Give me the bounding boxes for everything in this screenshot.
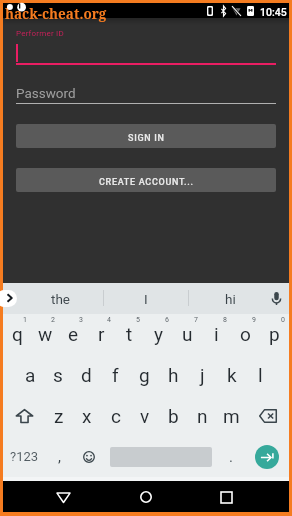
staticText: 7 xyxy=(194,316,198,324)
staticText: v xyxy=(140,405,150,427)
button[interactable]: x xyxy=(73,395,101,436)
button[interactable]: Enter xyxy=(255,445,279,469)
button[interactable]: hi xyxy=(188,283,273,314)
button[interactable]: Voice input xyxy=(267,286,285,310)
staticText: 3 xyxy=(79,316,83,324)
staticText: 0 xyxy=(281,316,285,324)
staticText: m xyxy=(223,405,240,427)
staticText: o xyxy=(240,323,251,345)
button[interactable]: a xyxy=(16,354,44,395)
staticText: the xyxy=(51,291,71,307)
button[interactable]: Emoji xyxy=(77,436,101,477)
button[interactable]: h xyxy=(159,354,188,395)
button[interactable]: e xyxy=(59,314,87,354)
button[interactable]: , xyxy=(47,436,71,477)
staticText: 6 xyxy=(165,316,169,324)
button[interactable]: n xyxy=(188,395,217,436)
button[interactable]: y xyxy=(144,314,173,354)
staticText: h xyxy=(168,364,179,386)
staticText: SIGN IN xyxy=(128,133,165,144)
button[interactable]: c xyxy=(101,395,130,436)
staticText: Performer ID xyxy=(16,29,64,38)
button[interactable]: v xyxy=(130,395,159,436)
staticText: u xyxy=(182,323,193,345)
button[interactable]: w xyxy=(31,314,59,354)
button[interactable]: . xyxy=(219,436,243,477)
button[interactable]: SIGN IN xyxy=(16,124,276,148)
staticText: d xyxy=(81,364,92,386)
button[interactable]: Shift xyxy=(3,395,45,436)
button[interactable]: l xyxy=(246,354,275,395)
button[interactable]: d xyxy=(72,354,101,395)
staticText: ?123 xyxy=(10,449,39,464)
button[interactable]: k xyxy=(217,354,246,395)
button[interactable]: b xyxy=(159,395,188,436)
staticText: , xyxy=(58,448,61,466)
button[interactable]: j xyxy=(188,354,217,395)
button[interactable]: t xyxy=(115,314,144,354)
staticText: w xyxy=(38,323,53,345)
staticText: f xyxy=(112,364,119,386)
button[interactable]: ?123 xyxy=(8,436,41,477)
button[interactable]: Expand suggestions xyxy=(0,290,17,307)
staticText: j xyxy=(200,364,205,386)
staticText: 5 xyxy=(136,316,140,324)
button[interactable]: Back xyxy=(48,482,78,512)
button[interactable]: I xyxy=(104,283,188,314)
button[interactable]: Backspace xyxy=(246,395,289,436)
staticText: r xyxy=(98,323,105,345)
staticText: p xyxy=(269,323,280,345)
staticText: t xyxy=(126,323,133,345)
staticText: I xyxy=(144,291,148,307)
button[interactable]: m xyxy=(217,395,246,436)
button[interactable]: i xyxy=(202,314,231,354)
staticText: hi xyxy=(225,291,236,307)
staticText: y xyxy=(154,323,163,345)
button[interactable]: u xyxy=(173,314,202,354)
button[interactable]: o xyxy=(231,314,260,354)
button[interactable]: s xyxy=(44,354,72,395)
button[interactable]: q xyxy=(3,314,31,354)
staticText: CREATE ACCOUNT... xyxy=(99,177,194,188)
button[interactable]: CREATE ACCOUNT... xyxy=(16,168,276,192)
staticText: 9 xyxy=(252,316,256,324)
staticText: c xyxy=(111,405,121,427)
staticText: l xyxy=(258,364,263,386)
button[interactable]: r xyxy=(87,314,115,354)
staticText: x xyxy=(82,405,92,427)
staticText: i xyxy=(214,323,219,345)
button[interactable]: Recents xyxy=(211,482,241,512)
button[interactable]: g xyxy=(130,354,159,395)
staticText: b xyxy=(168,405,179,427)
button[interactable]: z xyxy=(45,395,73,436)
staticText: Password xyxy=(16,85,76,101)
staticText: e xyxy=(68,323,79,345)
staticText: 4 xyxy=(107,316,111,324)
staticText: 1 xyxy=(23,316,27,324)
staticText: 10:45 xyxy=(260,6,287,18)
staticText: n xyxy=(197,405,208,427)
staticText: a xyxy=(25,364,36,386)
button[interactable]: Home xyxy=(131,482,161,512)
staticText: . xyxy=(229,448,233,466)
staticText: s xyxy=(53,364,63,386)
staticText: z xyxy=(54,405,64,427)
button[interactable]: f xyxy=(101,354,130,395)
staticText: hack-cheat.org xyxy=(5,5,107,23)
staticText: k xyxy=(227,364,237,386)
staticText: 2 xyxy=(51,316,55,324)
staticText: g xyxy=(139,364,150,386)
staticText: 8 xyxy=(223,316,227,324)
button[interactable]: the xyxy=(17,283,104,314)
button[interactable]: p xyxy=(260,314,289,354)
staticText: q xyxy=(12,323,23,345)
